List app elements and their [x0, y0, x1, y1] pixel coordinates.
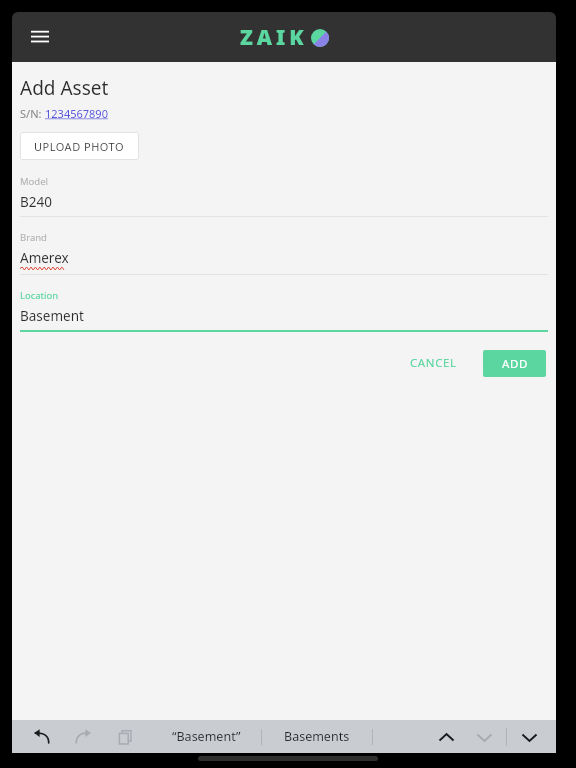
button[interactable]: Basements [262, 720, 372, 753]
button[interactable]: ADD [483, 350, 546, 377]
button[interactable]: Previous field [431, 722, 461, 752]
button[interactable]: 1234567890 [45, 106, 108, 121]
button[interactable]: Next field [469, 722, 499, 752]
button[interactable]: Paste [110, 722, 140, 752]
staticText: B240 [20, 193, 52, 211]
staticText: Add Asset [20, 75, 109, 101]
button[interactable]: CANCEL [398, 349, 469, 377]
button[interactable]: Undo [26, 722, 56, 752]
staticText: Basements [284, 728, 350, 745]
staticText: UPLOAD PHOTO [34, 139, 125, 154]
staticText: “Basement” [172, 728, 241, 745]
staticText: Basement [20, 307, 84, 325]
staticText: Model [20, 175, 49, 188]
button[interactable]: Menu [20, 17, 60, 57]
staticText: Brand [20, 231, 47, 244]
button[interactable]: “Basement” [151, 720, 261, 753]
staticText: CANCEL [410, 355, 457, 371]
button[interactable]: Redo [68, 722, 98, 752]
staticText: ADD [502, 356, 528, 372]
staticText: 1234567890 [45, 106, 108, 121]
button[interactable]: Hide keyboard [514, 722, 544, 752]
staticText: Location [20, 289, 59, 302]
staticText: S/N: [20, 106, 45, 121]
button[interactable]: UPLOAD PHOTO [20, 132, 139, 160]
staticText: Amerex [20, 249, 69, 267]
staticText: ZAIK [240, 23, 308, 52]
